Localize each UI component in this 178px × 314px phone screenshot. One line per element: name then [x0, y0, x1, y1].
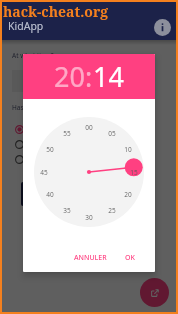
staticText: Clean room: [28, 140, 64, 149]
staticText: 50: [46, 145, 54, 154]
staticText: 05: [108, 129, 116, 138]
button[interactable]: ANNULER: [69, 249, 112, 267]
button[interactable]: [12, 70, 132, 92]
staticText: 10: [124, 145, 132, 154]
staticText: 15: [130, 168, 138, 177]
staticText: 20: [124, 190, 132, 199]
staticText: 25: [108, 206, 116, 215]
staticText: 30: [85, 213, 93, 222]
button[interactable]: 20: [54, 58, 85, 95]
button[interactable]: Clean room: [15, 138, 125, 151]
button[interactable]: 14: [93, 58, 124, 95]
button[interactable]: Read a book: [15, 153, 125, 166]
button[interactable]: Homework: [15, 123, 125, 136]
staticText: Has to do:: [12, 103, 43, 112]
button[interactable]: VALIDER: [21, 182, 111, 206]
staticText: 00: [85, 123, 93, 132]
staticText: 55: [63, 129, 71, 138]
staticText: 45: [40, 168, 48, 177]
button[interactable]: Open task: [140, 278, 169, 307]
button[interactable]: Info: [152, 17, 172, 37]
staticText: 35: [63, 206, 71, 215]
staticText: VALIDER: [52, 189, 80, 199]
button[interactable]: OK: [120, 249, 140, 267]
staticText: Homework: [28, 125, 62, 134]
staticText: KidApp: [8, 19, 44, 33]
staticText: 40: [46, 190, 54, 199]
staticText: OK: [125, 253, 135, 263]
staticText: ANNULER: [74, 253, 107, 263]
staticText: Read a book: [28, 155, 66, 164]
staticText: :: [85, 58, 93, 95]
staticText: hack-cheat.org: [3, 2, 109, 21]
staticText: At what time?: [12, 51, 54, 60]
